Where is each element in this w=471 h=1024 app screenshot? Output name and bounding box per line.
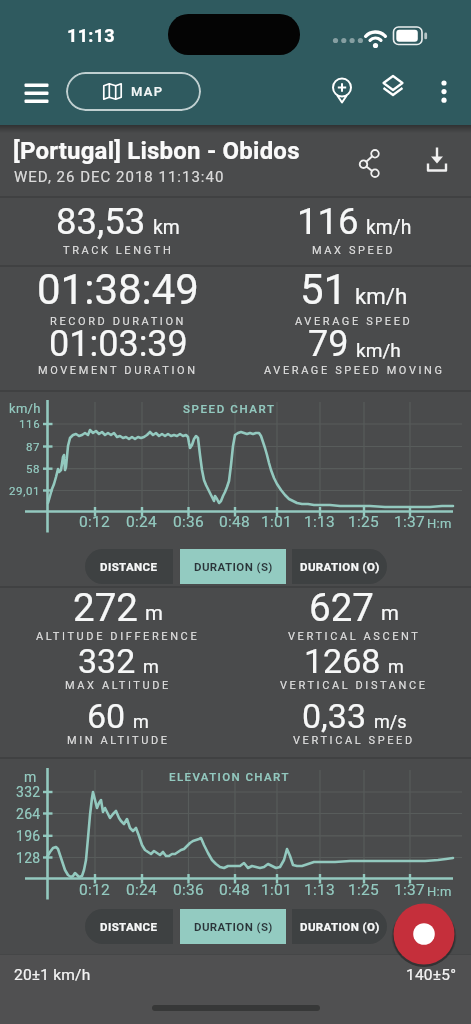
staticText: m — [133, 711, 149, 732]
staticText: SPEED CHART — [183, 402, 276, 415]
button[interactable]: DISTANCE — [85, 549, 173, 584]
staticText: AVERAGE SPEED MOVING — [264, 364, 445, 377]
button[interactable] — [318, 68, 366, 116]
staticText: DURATION (S) — [194, 920, 273, 933]
staticText: ELEVATION CHART — [169, 770, 290, 783]
staticText: 1:25 — [348, 513, 380, 531]
staticText: 128 — [16, 850, 41, 866]
staticText: 332 — [78, 641, 136, 681]
staticText: AVERAGE SPEED — [295, 315, 413, 328]
staticText: 87 — [26, 440, 41, 453]
staticText: 0:48 — [219, 881, 251, 899]
staticText: 83,53 — [56, 200, 146, 243]
staticText: 1:25 — [348, 881, 380, 899]
staticText: VERTICAL DISTANCE — [280, 679, 428, 692]
staticText: 58 — [26, 462, 41, 475]
staticText: km/h — [356, 339, 401, 361]
staticText: 1:37 — [394, 513, 426, 531]
staticText: MAP — [131, 84, 164, 99]
button[interactable]: MAP — [66, 72, 201, 111]
staticText: 1:01 — [261, 881, 293, 899]
staticText: 0:36 — [173, 881, 205, 899]
staticText: km/h — [9, 401, 41, 416]
button[interactable] — [391, 901, 457, 967]
staticText: TRACK LENGTH — [63, 244, 174, 257]
staticText: RECORD DURATION — [50, 315, 187, 328]
button[interactable]: DURATION (O) — [292, 909, 387, 944]
staticText: 0:48 — [219, 513, 251, 531]
staticText: km/h — [366, 216, 412, 239]
staticText: H:m — [427, 884, 452, 899]
staticText: 116 — [297, 200, 359, 243]
staticText: km/h — [355, 283, 408, 309]
staticText: km — [153, 216, 180, 239]
staticText: WED, 26 DEC 2018 11:13:40 — [14, 168, 225, 186]
button[interactable]: DISTANCE — [85, 909, 173, 944]
staticText: 20±1 km/h — [14, 966, 91, 984]
button[interactable] — [415, 140, 459, 184]
staticText: m — [145, 601, 163, 625]
staticText: 272 — [73, 585, 138, 630]
staticText: [Portugal] Lisbon - Obidos — [13, 137, 300, 165]
staticText: m — [381, 601, 399, 625]
button[interactable] — [420, 68, 468, 116]
staticText: 196 — [16, 828, 41, 844]
staticText: 1268 — [304, 641, 381, 681]
staticText: 01:03:39 — [49, 323, 188, 365]
staticText: MOVEMENT DURATION — [38, 364, 198, 377]
staticText: 264 — [16, 806, 41, 822]
staticText: m/s — [374, 711, 407, 732]
staticText: 01:38:49 — [37, 265, 199, 314]
staticText: m — [24, 769, 37, 785]
staticText: VERTICAL SPEED — [293, 734, 415, 747]
staticText: VERTICAL ASCENT — [288, 630, 421, 643]
staticText: DURATION (O) — [300, 560, 380, 573]
staticText: DISTANCE — [100, 560, 158, 573]
staticText: 0:24 — [126, 881, 158, 899]
staticText: H:m — [427, 516, 452, 531]
button[interactable]: DURATION (S) — [180, 549, 286, 584]
staticText: DURATION (O) — [300, 920, 380, 933]
staticText: 60 — [87, 696, 126, 736]
staticText: 0:24 — [126, 513, 158, 531]
staticText: 11:13 — [67, 25, 115, 46]
staticText: 0:36 — [173, 513, 205, 531]
staticText: ALTITUDE DIFFERENCE — [36, 630, 200, 643]
staticText: MAX SPEED — [312, 244, 396, 257]
staticText: 332 — [16, 784, 41, 800]
staticText: 0:12 — [79, 881, 111, 899]
staticText: 1:13 — [304, 881, 336, 899]
staticText: MAX ALTITUDE — [65, 679, 171, 692]
button[interactable]: DURATION (O) — [292, 549, 387, 584]
staticText: 79 — [308, 323, 349, 365]
button[interactable] — [12, 79, 60, 107]
button[interactable]: DURATION (S) — [180, 909, 286, 944]
staticText: 1:01 — [261, 513, 293, 531]
staticText: 1:37 — [394, 881, 426, 899]
staticText: 116 — [19, 417, 41, 430]
staticText: MIN ALTITUDE — [67, 734, 170, 747]
staticText: 29,01 — [9, 484, 41, 497]
staticText: m — [143, 656, 159, 677]
button[interactable] — [346, 140, 390, 184]
button[interactable] — [369, 68, 417, 116]
staticText: DISTANCE — [100, 920, 158, 933]
staticText: 51 — [300, 265, 348, 314]
staticText: 140±5° — [406, 966, 457, 984]
staticText: 1:13 — [304, 513, 336, 531]
staticText: 0,33 — [302, 696, 367, 736]
staticText: 627 — [309, 585, 374, 630]
staticText: m — [388, 656, 404, 677]
staticText: 0:12 — [79, 513, 111, 531]
staticText: DURATION (S) — [194, 560, 273, 573]
